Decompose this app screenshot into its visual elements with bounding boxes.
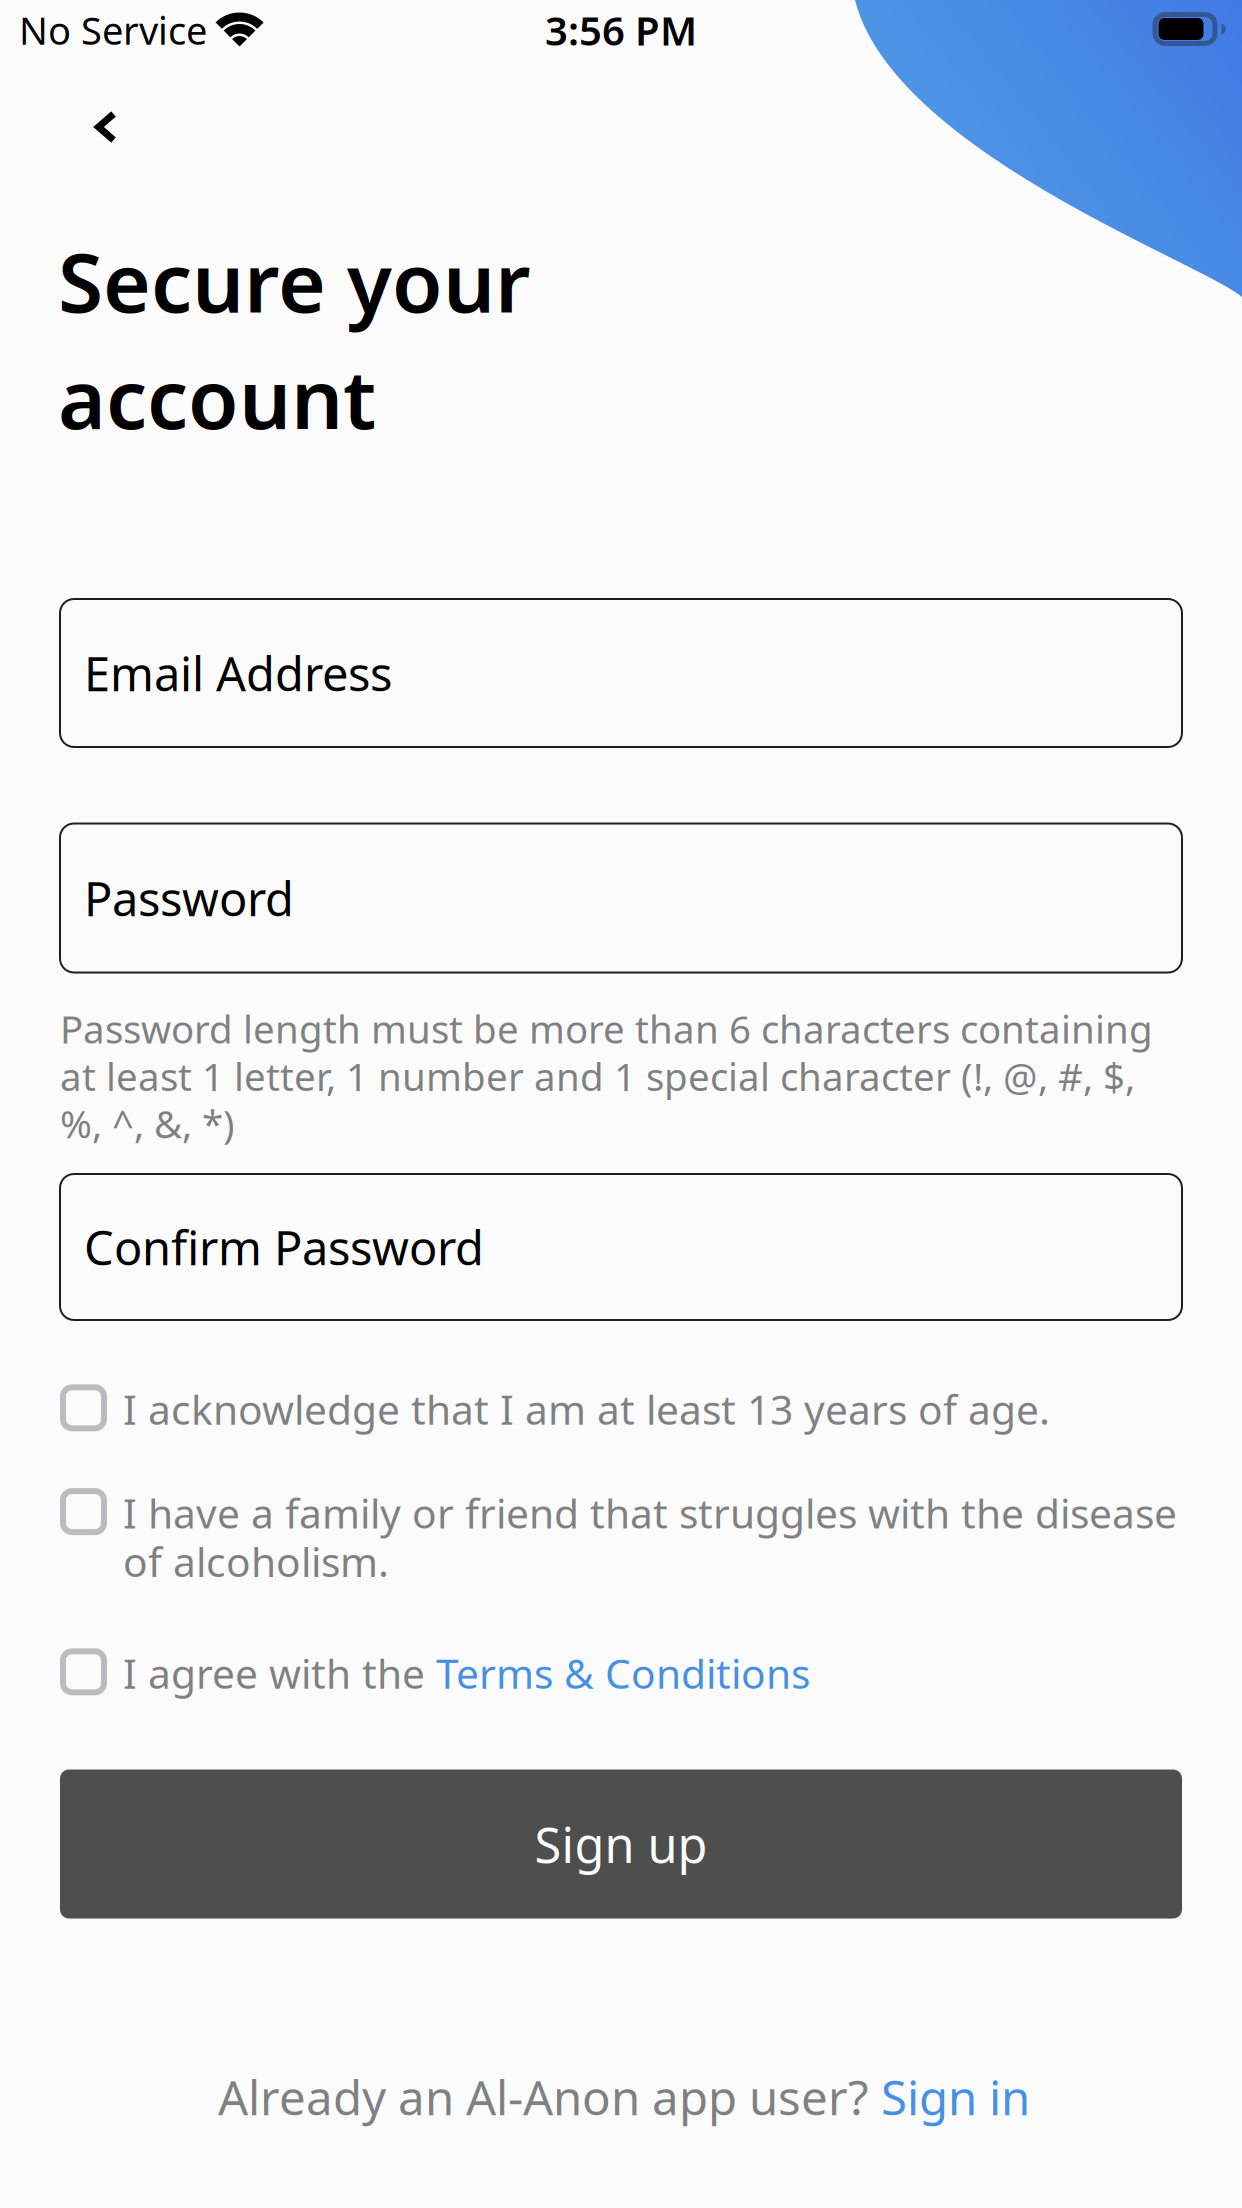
staticText: Already an Al-Anon app user? (218, 2065, 881, 2129)
button[interactable]: Confirm Password (60, 1174, 1182, 1320)
staticText: Sign in (881, 2065, 1030, 2129)
staticText: Terms & Conditions (436, 1645, 810, 1701)
staticText: I acknowledge that I am at least 13 year… (123, 1381, 1050, 1437)
button[interactable]: Sign in (881, 2065, 1030, 2129)
staticText: Sign up (534, 1811, 707, 1877)
button[interactable]: I have a family or friend that struggles… (60, 1485, 1182, 1589)
staticText: 3:56 PM (545, 3, 697, 57)
staticText: Secure your account (58, 225, 531, 453)
staticText: Confirm Password (84, 1215, 484, 1279)
staticText: Email Address (84, 641, 392, 705)
staticText: I have a family or friend that struggles… (123, 1485, 1177, 1589)
button[interactable]: Email Address (60, 599, 1182, 747)
button[interactable]: I acknowledge that I am at least 13 year… (60, 1381, 1182, 1437)
button[interactable]: I agree with the (60, 1645, 1182, 1701)
button[interactable]: Back (50, 71, 162, 183)
staticText: Password (84, 866, 294, 930)
button[interactable]: Password (60, 823, 1182, 972)
staticText: No Service (19, 4, 207, 56)
button[interactable]: Sign up (60, 1769, 1182, 1918)
staticText: I agree with the (123, 1645, 436, 1701)
staticText: Password length must be more than 6 char… (60, 1003, 1153, 1149)
